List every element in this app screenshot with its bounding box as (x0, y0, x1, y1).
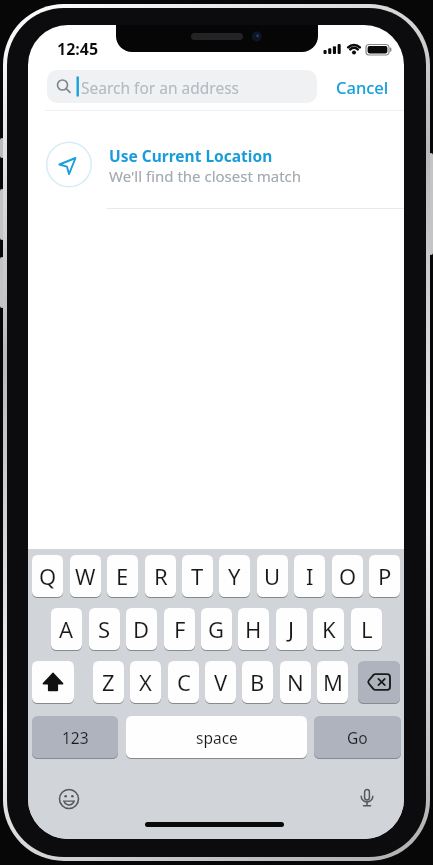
button[interactable]: I (294, 555, 325, 597)
staticText: T (191, 561, 204, 591)
staticText: W (75, 561, 96, 591)
staticText: B (250, 667, 265, 697)
button[interactable]: A (51, 608, 82, 650)
staticText: Search for an address (81, 77, 239, 98)
staticText: H (245, 614, 262, 644)
button[interactable] (358, 661, 400, 703)
button[interactable]: S (89, 608, 120, 650)
staticText: O (339, 561, 357, 591)
staticText: G (208, 614, 225, 644)
button[interactable]: E (107, 555, 138, 597)
button[interactable]: Z (93, 661, 124, 703)
staticText: space (196, 727, 238, 748)
staticText: Z (102, 667, 115, 697)
button[interactable]: T (182, 555, 213, 597)
staticText: J (288, 614, 295, 644)
staticText: A (59, 614, 74, 644)
staticText: 123 (62, 727, 89, 748)
button[interactable]: U (257, 555, 288, 597)
button[interactable]: space (126, 716, 307, 758)
button[interactable]: Cancel (328, 70, 398, 103)
button[interactable]: B (242, 661, 273, 703)
button[interactable]: L (351, 608, 382, 650)
button[interactable]: J (276, 608, 307, 650)
button[interactable] (32, 661, 74, 703)
button[interactable]: Q (32, 555, 63, 597)
staticText: Go (347, 727, 368, 748)
staticText: Y (228, 561, 241, 591)
button[interactable]: D (126, 608, 157, 650)
staticText: L (361, 614, 373, 644)
button[interactable]: Go (314, 716, 401, 758)
staticText: M (323, 667, 343, 697)
button[interactable]: N (280, 661, 311, 703)
staticText: We'll find the closest match (109, 166, 302, 186)
staticText: U (264, 561, 281, 591)
button[interactable] (28, 120, 404, 208)
button[interactable]: R (145, 555, 176, 597)
button[interactable]: P (369, 555, 400, 597)
button[interactable] (47, 70, 317, 103)
staticText: E (116, 561, 129, 591)
staticText: 12:45 (57, 38, 99, 60)
staticText: K (322, 614, 336, 644)
button[interactable]: X (130, 661, 161, 703)
staticText: R (154, 561, 168, 591)
button[interactable]: K (313, 608, 344, 650)
button[interactable]: V (205, 661, 236, 703)
button[interactable]: C (168, 661, 199, 703)
button[interactable]: M (317, 661, 348, 703)
staticText: Use Current Location (109, 145, 273, 166)
staticText: S (98, 614, 111, 644)
staticText: Cancel (336, 76, 389, 98)
staticText: C (177, 667, 191, 697)
button[interactable]: W (70, 555, 101, 597)
staticText: X (139, 667, 152, 697)
staticText: P (378, 561, 392, 591)
staticText: D (133, 614, 150, 644)
staticText: Q (39, 561, 57, 591)
button[interactable]: 123 (32, 716, 118, 758)
button[interactable]: G (201, 608, 232, 650)
button[interactable]: H (238, 608, 269, 650)
staticText: N (287, 667, 304, 697)
button[interactable]: O (332, 555, 363, 597)
staticText: I (306, 561, 314, 591)
staticText: V (214, 667, 228, 697)
staticText: F (174, 614, 186, 644)
button[interactable]: Y (219, 555, 250, 597)
button[interactable]: F (164, 608, 195, 650)
